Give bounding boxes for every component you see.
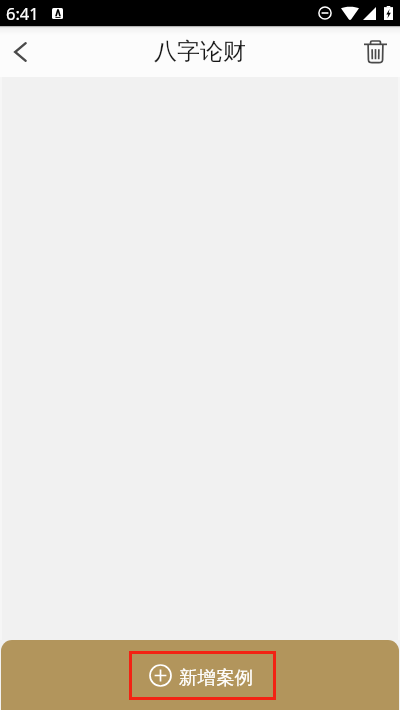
button[interactable]: Back [0, 26, 40, 77]
button[interactable]: 新增案例 [129, 651, 276, 700]
staticText: 6:41 [6, 2, 39, 24]
staticText: 八字论财 [154, 37, 246, 66]
button[interactable]: Delete [350, 26, 400, 77]
staticText: 新增案例 [179, 666, 253, 689]
